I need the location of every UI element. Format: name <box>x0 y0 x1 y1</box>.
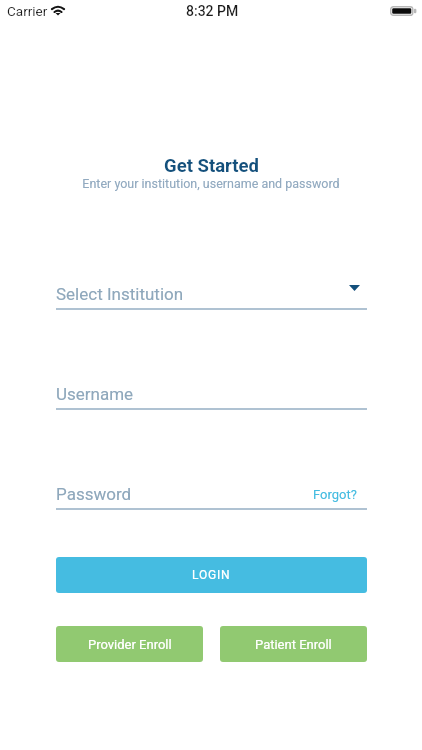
button[interactable]: Password <box>56 482 367 510</box>
staticText: Patient Enroll <box>255 637 332 652</box>
staticText: Password <box>56 484 132 504</box>
staticText: Provider Enroll <box>88 637 172 652</box>
staticText: Get Started <box>164 155 259 177</box>
button[interactable]: Username <box>56 382 367 410</box>
button[interactable]: Patient Enroll <box>220 626 367 662</box>
button[interactable]: LOGIN <box>56 557 367 593</box>
button[interactable]: Forgot? <box>313 487 357 502</box>
button[interactable]: Open institution list <box>346 281 362 295</box>
button[interactable]: Select Institution <box>56 282 367 310</box>
staticText: 8:32 PM <box>186 3 239 19</box>
staticText: Forgot? <box>313 487 357 502</box>
staticText: LOGIN <box>192 568 231 582</box>
staticText: Enter your institution, username and pas… <box>82 176 340 191</box>
staticText: Select Institution <box>56 284 184 304</box>
staticText: Carrier <box>7 3 48 19</box>
other: Battery full <box>390 6 418 16</box>
button[interactable]: Provider Enroll <box>56 626 203 662</box>
other: Wi-Fi <box>50 4 68 17</box>
staticText: Username <box>56 384 134 404</box>
